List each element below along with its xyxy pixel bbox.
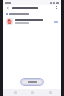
- button[interactable]: More options: [54, 6, 58, 10]
- button[interactable]: Navigate up: [6, 6, 10, 10]
- button[interactable]: [20, 78, 44, 86]
- button[interactable]: Recents: [9, 89, 21, 96]
- button[interactable]: Back: [44, 89, 56, 96]
- button[interactable]: [3, 11, 61, 16]
- button[interactable]: Home: [26, 89, 38, 96]
- button[interactable]: [3, 16, 61, 27]
